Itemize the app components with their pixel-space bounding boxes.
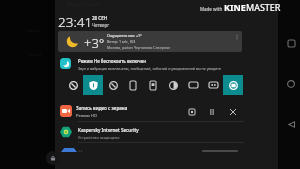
staticText: 28 СЕН <box>92 15 108 21</box>
button[interactable]: Back <box>280 113 300 135</box>
staticText: KINE <box>224 1 246 13</box>
button[interactable]: Recents <box>280 32 300 54</box>
staticText: Kaspersky Internet Security <box>78 127 139 133</box>
staticText: Режим Не беспокоить включен <box>78 58 146 64</box>
button[interactable]: Quick setting <box>223 75 243 95</box>
button[interactable]: Quick setting <box>83 75 103 95</box>
staticText: Ветер: 1 м/с, ЮЗ <box>107 39 136 44</box>
button[interactable]: Home <box>280 73 300 95</box>
button[interactable]: Quick setting <box>143 75 163 95</box>
button[interactable]: Quick setting <box>63 75 83 95</box>
staticText: +3° <box>84 34 105 52</box>
button[interactable]: Quick setting <box>123 75 143 95</box>
button[interactable]: +3° <box>58 31 242 52</box>
staticText: Москва, район Чертаново Северное <box>107 45 171 50</box>
button[interactable]: Kaspersky Internet Security <box>55 124 278 141</box>
staticText: Режим HD <box>76 113 97 119</box>
staticText: Made with <box>200 6 224 12</box>
button[interactable]: Pause recording <box>206 106 217 117</box>
button[interactable]: Stop recording <box>186 106 197 117</box>
staticText: MASTER <box>246 1 281 13</box>
button[interactable]: More options <box>233 33 241 41</box>
staticText: Звук и вибрация выключены, сообщений, со… <box>78 66 221 71</box>
button[interactable]: Quick setting <box>183 75 203 95</box>
button[interactable]: Запись видео с экрана <box>55 102 278 119</box>
button[interactable]: Lock <box>46 151 60 165</box>
staticText: Ощущается как: +1° <box>107 33 142 38</box>
button[interactable]: Quick setting <box>163 75 183 95</box>
button[interactable]: Quick setting <box>203 75 223 95</box>
button[interactable] <box>55 146 278 153</box>
button[interactable]: Режим Не беспокоить включен <box>55 54 278 70</box>
button[interactable]: Quick setting <box>103 75 123 95</box>
staticText: Запись видео с экрана <box>76 105 128 111</box>
button[interactable]: Dismiss <box>227 106 238 117</box>
staticText: Четверг <box>92 22 110 28</box>
staticText: Устройство защищено <box>78 135 120 140</box>
staticText: 23:41 <box>58 13 93 31</box>
